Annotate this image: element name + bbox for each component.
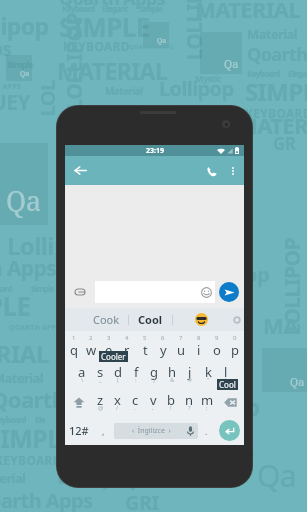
button[interactable]: Enter <box>219 420 240 441</box>
staticText: 2 <box>89 334 93 342</box>
button[interactable]: 1 <box>65 331 82 360</box>
staticText: q <box>70 341 78 359</box>
button[interactable]: a <box>73 360 91 388</box>
button[interactable]: d <box>109 360 127 388</box>
staticText: ! <box>170 404 172 412</box>
staticText: 7 <box>179 334 183 342</box>
staticText: ? <box>188 404 191 412</box>
button[interactable]: f <box>127 360 145 388</box>
staticText: Material <box>105 84 143 98</box>
staticText: Lollip <box>7 229 69 262</box>
staticText: n <box>185 391 194 409</box>
staticText: LOL <box>33 80 60 116</box>
button[interactable]: ‹ İngilizce › <box>114 423 198 439</box>
button[interactable]: 12# <box>65 416 93 445</box>
button[interactable]: Attach <box>65 276 95 308</box>
staticText: Material <box>247 25 298 43</box>
staticText: a <box>78 363 86 381</box>
button[interactable]: More options <box>224 162 242 180</box>
staticText: u <box>177 341 186 359</box>
staticText: i <box>197 341 201 359</box>
button[interactable]: Keyboard settings <box>229 308 244 331</box>
staticText: KEYBOARD <box>0 452 62 468</box>
button[interactable]: l <box>217 360 235 388</box>
staticText: Qa <box>114 314 126 326</box>
button[interactable]: Backspace <box>216 388 244 416</box>
button[interactable]: , <box>93 416 114 445</box>
button[interactable]: x <box>109 388 126 416</box>
staticText: o <box>213 341 221 359</box>
button[interactable]: 4 <box>118 331 136 360</box>
staticText: p <box>231 341 239 359</box>
staticText: op <box>245 261 269 288</box>
button[interactable]: g <box>145 360 163 388</box>
staticText: Ele <box>35 414 45 425</box>
button[interactable]: . <box>198 416 214 445</box>
staticText: h <box>168 363 177 381</box>
staticText: SIMPLE <box>59 9 150 44</box>
button[interactable] <box>173 308 229 331</box>
staticText: Elegant <box>288 68 307 79</box>
button[interactable]: j <box>181 360 199 388</box>
button[interactable]: s <box>91 360 109 388</box>
staticText: QOARTH APPS <box>9 323 61 333</box>
button[interactable]: 8 <box>190 331 208 360</box>
button[interactable]: v <box>144 388 162 416</box>
staticText: 5 <box>143 334 147 342</box>
staticText: GRI <box>125 489 159 512</box>
staticText: 0 <box>233 334 237 342</box>
button[interactable]: Back <box>65 156 95 185</box>
staticText: GR <box>273 132 296 155</box>
staticText: Simple <box>7 58 34 70</box>
button[interactable]: 6 <box>154 331 172 360</box>
button[interactable]: Call <box>198 158 224 184</box>
button[interactable]: Shift <box>65 388 92 416</box>
staticText: 8 <box>197 334 201 342</box>
button[interactable]: Cook <box>85 308 128 331</box>
button[interactable]: c <box>126 388 144 416</box>
staticText: : <box>135 376 137 384</box>
staticText: 9 <box>215 334 219 342</box>
staticText: ps <box>0 36 12 62</box>
staticText: SIMPL <box>0 421 61 455</box>
staticText: ) <box>153 376 155 384</box>
staticText: / <box>116 404 119 412</box>
button[interactable]: b <box>162 388 180 416</box>
staticText: 6 <box>161 334 165 342</box>
button[interactable]: m <box>198 388 216 416</box>
staticText: e <box>105 341 113 359</box>
staticText: SIMPL <box>245 75 307 108</box>
button[interactable] <box>95 281 215 303</box>
button[interactable]: 0 <box>226 331 244 360</box>
staticText: Keyboard <box>247 68 281 79</box>
staticText: KEYBOARD <box>245 105 307 121</box>
staticText: Cool <box>138 312 163 327</box>
button[interactable]: 7 <box>172 331 190 360</box>
staticText: Cook <box>93 312 120 327</box>
staticText: g <box>150 363 158 381</box>
staticText: llipop <box>199 391 260 422</box>
staticText: x <box>114 391 121 409</box>
button[interactable]: n <box>180 388 198 416</box>
staticText: Qa <box>224 56 239 71</box>
staticText: PLE <box>0 288 31 323</box>
button[interactable]: z <box>92 388 109 416</box>
staticText: Qa <box>157 36 167 46</box>
button[interactable]: Send <box>219 282 239 302</box>
staticText: t <box>143 341 148 359</box>
button[interactable]: 9 <box>208 331 226 360</box>
button[interactable]: h <box>163 360 181 388</box>
staticText: _ <box>99 376 102 384</box>
staticText: Qoarth Apps <box>59 0 166 11</box>
button[interactable]: 3 <box>100 331 118 360</box>
staticText: , <box>152 404 154 412</box>
button[interactable]: k <box>199 360 217 388</box>
staticText: Qa <box>6 182 42 219</box>
button[interactable]: Cool <box>129 308 172 331</box>
staticText: n Apps <box>0 254 57 283</box>
staticText: Simple <box>227 447 254 459</box>
button[interactable]: 2 <box>82 331 100 360</box>
staticText: UEY <box>0 88 30 117</box>
button[interactable]: Voice input <box>187 426 194 436</box>
button[interactable]: 5 <box>136 331 154 360</box>
